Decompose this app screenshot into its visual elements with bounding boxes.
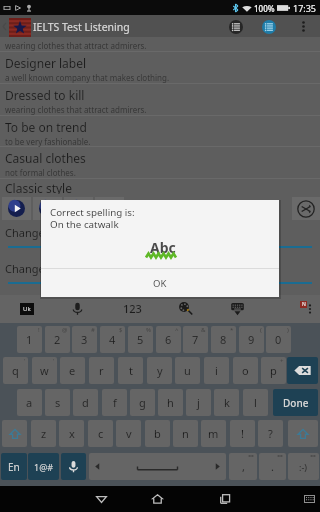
button[interactable]: d xyxy=(73,389,98,416)
button[interactable]: b xyxy=(145,420,170,447)
button[interactable]: Play xyxy=(2,197,31,220)
staticText: Classic style xyxy=(5,180,72,194)
button[interactable]: Hide keyboard xyxy=(230,301,245,316)
staticText: . xyxy=(271,459,274,474)
button[interactable]: j xyxy=(186,389,211,416)
button[interactable]: Emoji xyxy=(288,453,319,480)
button[interactable]: To be on trend xyxy=(0,116,320,147)
button[interactable]: i xyxy=(204,357,229,384)
button[interactable]: 3 xyxy=(72,326,97,353)
button[interactable]: 8 xyxy=(211,326,236,353)
staticText: N xyxy=(302,301,306,308)
button[interactable]: Vocabulary list xyxy=(225,16,246,37)
button[interactable]: x xyxy=(59,420,84,447)
button[interactable]: Recent apps xyxy=(205,486,245,512)
button[interactable]: 123 xyxy=(119,301,145,316)
button[interactable]: Switch keyboard xyxy=(301,486,317,512)
button[interactable]: 7 xyxy=(183,326,208,353)
staticText: 4 xyxy=(109,332,116,347)
staticText: * xyxy=(230,326,234,334)
button[interactable]: q xyxy=(3,357,28,384)
button[interactable]: Theme xyxy=(178,301,193,316)
staticText: Change speed xyxy=(5,261,79,276)
button[interactable]: u xyxy=(175,357,200,384)
staticText: q xyxy=(12,363,19,378)
button[interactable]: Shift xyxy=(2,420,27,447)
button[interactable]: Classic style xyxy=(0,178,320,192)
button[interactable]: Shuffle xyxy=(292,197,320,220)
button[interactable]: Backspace xyxy=(287,357,318,384)
button[interactable]: n xyxy=(173,420,198,447)
button[interactable]: v xyxy=(116,420,141,447)
button[interactable]: g xyxy=(130,389,155,416)
button[interactable]: Space xyxy=(89,453,226,480)
button[interactable]: w xyxy=(32,357,57,384)
button[interactable]: e xyxy=(60,357,85,384)
staticText: 0 xyxy=(275,332,282,347)
button[interactable]: Rewind xyxy=(33,197,62,220)
button[interactable]: Forward xyxy=(64,197,93,220)
button[interactable]: More options xyxy=(296,15,310,37)
button[interactable]: Transcript xyxy=(258,16,279,37)
button[interactable]: 2 xyxy=(45,326,70,353)
button[interactable]: Designer label xyxy=(0,52,320,83)
button[interactable]: t xyxy=(118,357,143,384)
staticText: p xyxy=(270,363,277,378)
staticText: @ xyxy=(62,326,68,334)
staticText: 8 xyxy=(220,332,227,347)
button[interactable]: ? xyxy=(258,420,283,447)
button[interactable]: More xyxy=(305,299,315,319)
button[interactable]: ! xyxy=(230,420,255,447)
button[interactable]: Repeat xyxy=(95,197,124,220)
button[interactable]: Symbols xyxy=(28,453,59,480)
staticText: r xyxy=(99,363,104,378)
button[interactable]: r xyxy=(89,357,114,384)
button[interactable]: Dressed to kill xyxy=(0,84,320,115)
staticText: l xyxy=(254,395,257,410)
button[interactable]: h xyxy=(158,389,183,416)
staticText: ( xyxy=(260,326,262,334)
button[interactable]: 9 xyxy=(239,326,264,353)
button[interactable]: Comma xyxy=(229,453,257,480)
staticText: Done xyxy=(283,396,309,410)
button[interactable]: l xyxy=(243,389,268,416)
button[interactable]: o xyxy=(233,357,258,384)
staticText: Correct spelling is: xyxy=(50,206,135,219)
staticText: Designer label xyxy=(5,55,87,71)
button[interactable]: Voice input xyxy=(61,453,86,480)
button[interactable]: k xyxy=(214,389,239,416)
button[interactable]: m xyxy=(201,420,226,447)
button[interactable]: s xyxy=(45,389,70,416)
staticText: not formal clothes. xyxy=(5,167,76,178)
button[interactable]: y xyxy=(147,357,172,384)
button[interactable]: Shift xyxy=(288,420,318,447)
button[interactable]: 4 xyxy=(100,326,125,353)
staticText: 123 xyxy=(123,301,142,316)
button[interactable]: Back xyxy=(81,486,121,512)
button[interactable]: f xyxy=(102,389,127,416)
button[interactable]: Done xyxy=(273,389,318,416)
button[interactable]: p xyxy=(261,357,286,384)
button[interactable]: c xyxy=(88,420,113,447)
button[interactable]: a xyxy=(17,389,42,416)
staticText: z xyxy=(41,426,47,441)
button[interactable]: 6 xyxy=(156,326,181,353)
staticText: y xyxy=(157,363,163,378)
button[interactable]: Uk xyxy=(20,303,34,315)
button[interactable]: 1 xyxy=(17,326,42,353)
button[interactable]: Change language xyxy=(1,453,27,480)
button[interactable]: 0 xyxy=(266,326,291,353)
staticText: IELTS Test Listening xyxy=(33,20,130,34)
staticText: Uk xyxy=(23,305,31,313)
button[interactable]: OK xyxy=(41,269,279,297)
button[interactable]: Period xyxy=(259,453,286,480)
button[interactable]: 5 xyxy=(128,326,153,353)
staticText: To be on trend xyxy=(5,119,87,135)
staticText: f xyxy=(113,395,117,410)
button[interactable]: z xyxy=(31,420,56,447)
button[interactable]: Voice input xyxy=(70,301,85,316)
button[interactable]: Casual clothes xyxy=(0,147,320,178)
staticText: Change pitch xyxy=(5,225,74,240)
button[interactable]: Home xyxy=(137,486,177,512)
